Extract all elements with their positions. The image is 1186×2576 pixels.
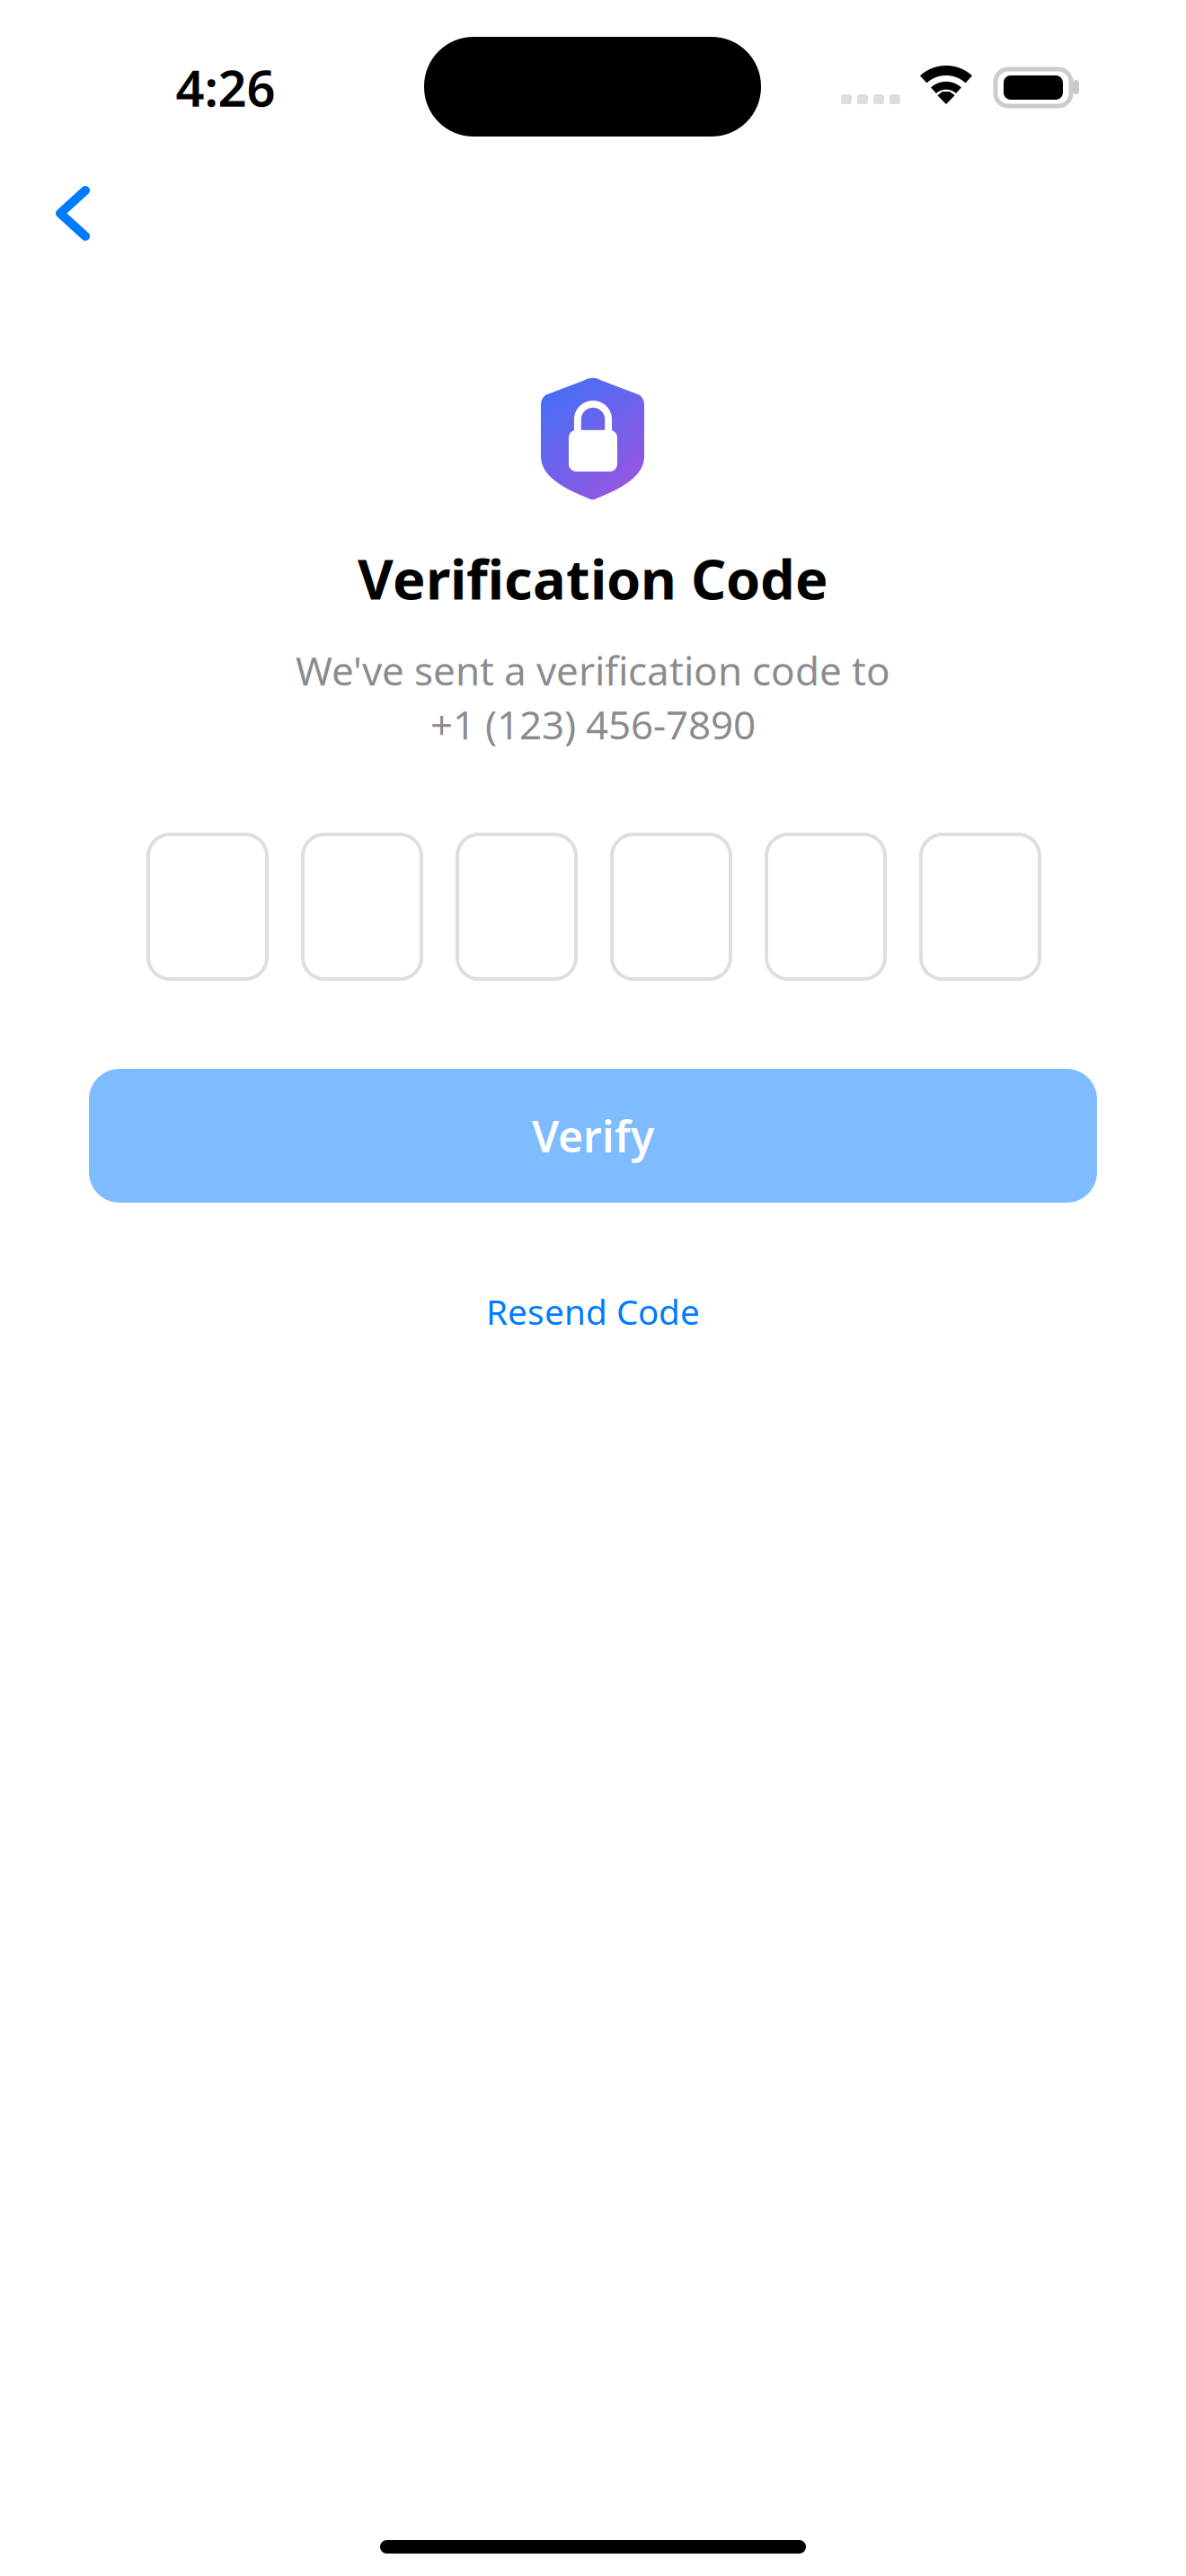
button[interactable]: Digit [766,834,885,979]
button[interactable]: Digit [303,834,421,979]
staticText: We've sent a verification code to [296,644,890,696]
staticText: 4:26 [176,54,275,121]
button[interactable]: Digit [612,834,730,979]
staticText: +1 (123) 456-7890 [430,698,756,750]
staticText: Verification Code [358,542,828,615]
button[interactable]: Resend Code [413,1278,773,1345]
button[interactable]: Digit [457,834,576,979]
staticText: Resend Code [486,1288,700,1334]
staticText: Verify [532,1107,654,1164]
button[interactable]: Digit [921,834,1040,979]
button[interactable]: Verify [89,1069,1097,1203]
button[interactable]: Back [31,165,114,261]
button[interactable]: Digit [148,834,267,979]
